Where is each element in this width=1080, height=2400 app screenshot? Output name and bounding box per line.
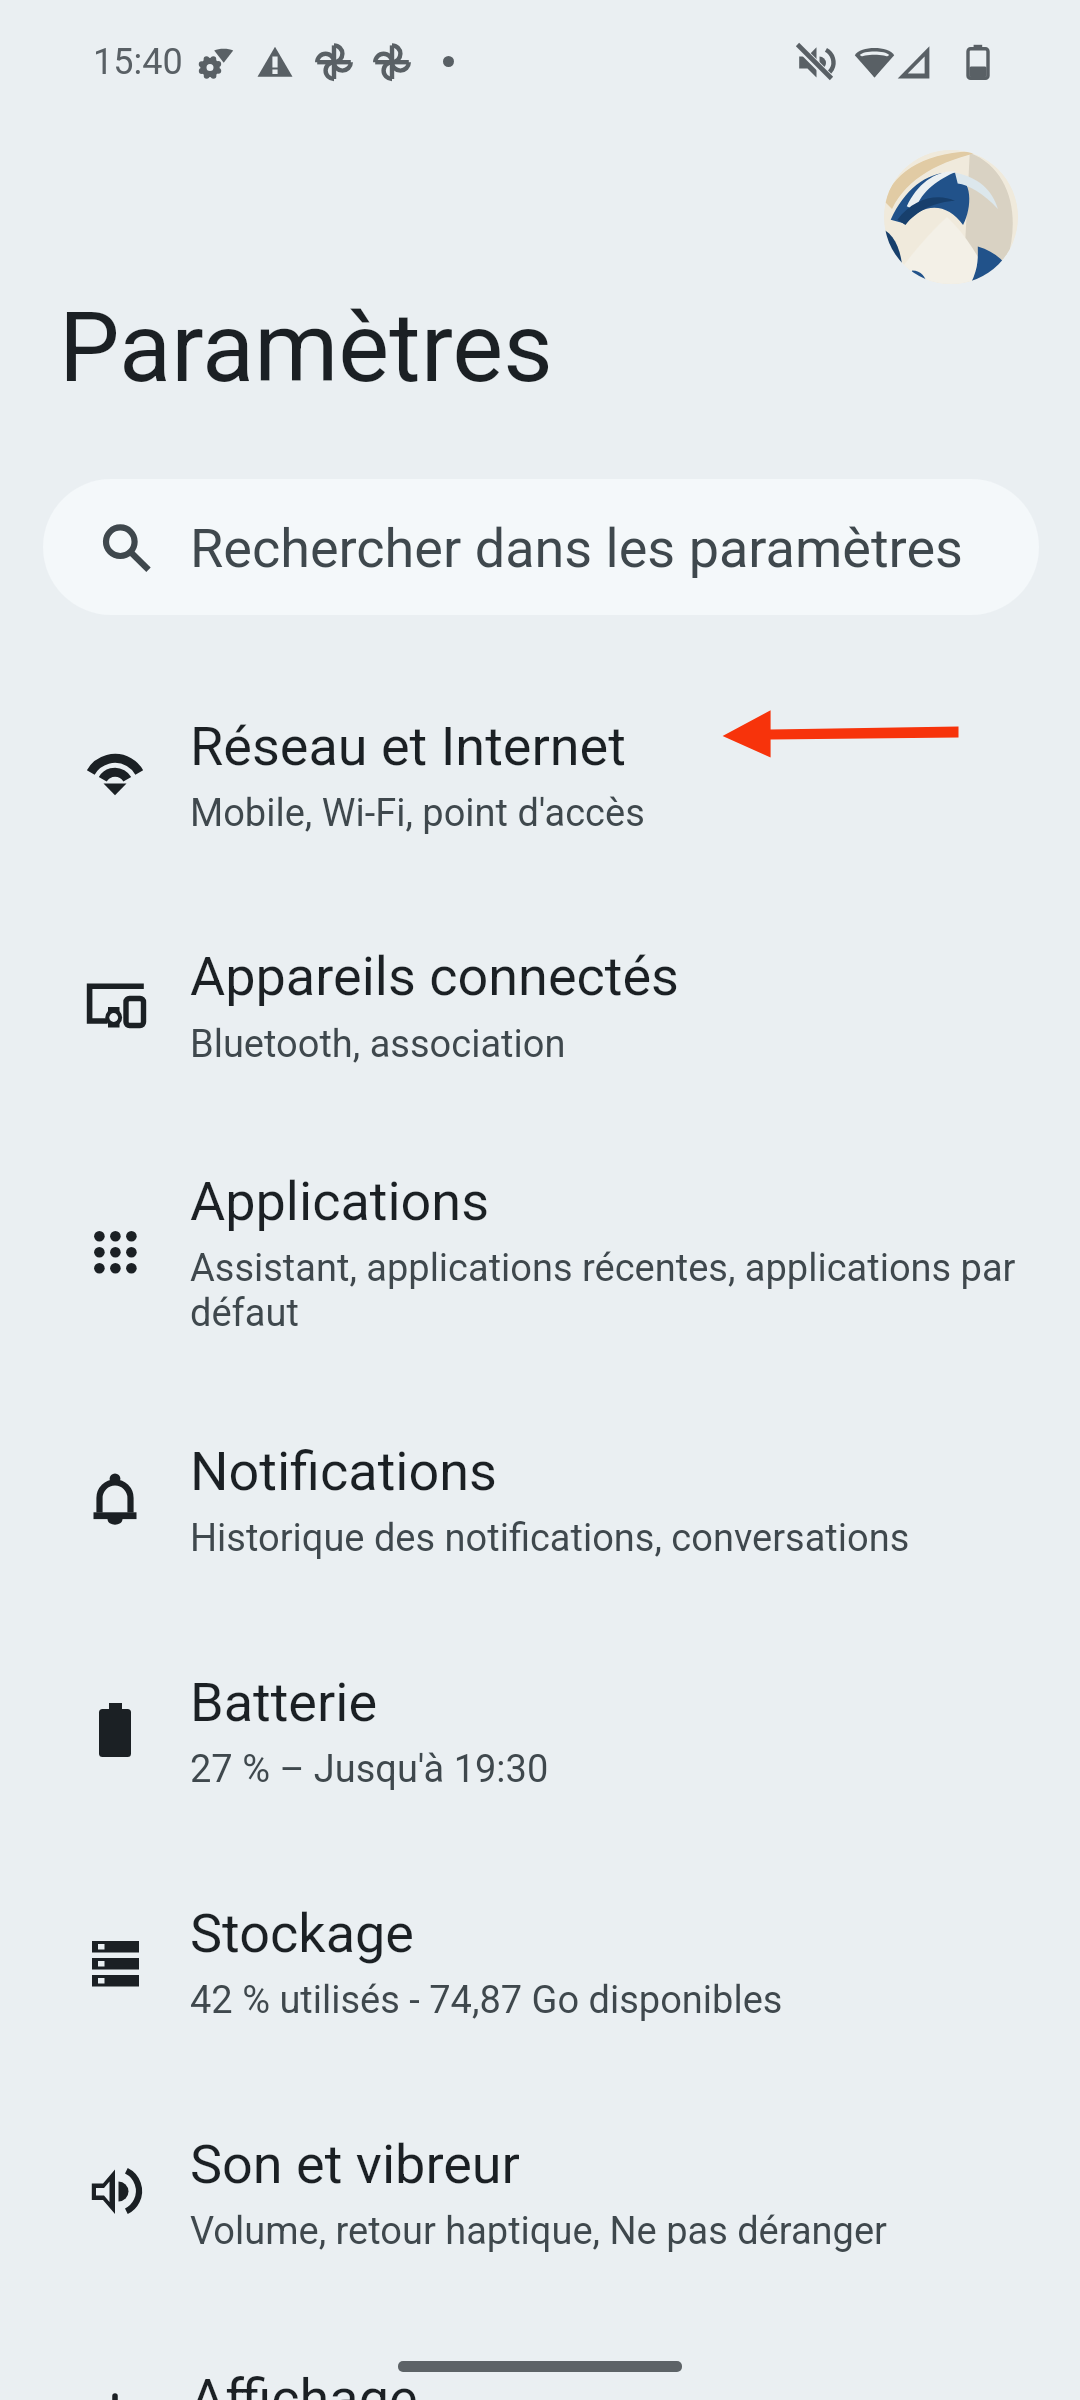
staticText: 27 % – Jusqu'à 19:30	[190, 1747, 549, 1792]
staticText: Notifications	[190, 1440, 497, 1503]
button[interactable]: Appareils connectés	[0, 899, 1080, 2400]
staticText: Volume, retour haptique, Ne pas déranger	[190, 2209, 887, 2254]
button[interactable]: Rechercher dans les paramètres	[43, 479, 1039, 615]
staticText: Historique des notifications, conversati…	[190, 1516, 910, 1561]
button[interactable]: Réseau et Internet	[0, 669, 1080, 2400]
button[interactable]: Stockage	[0, 1856, 1080, 2400]
button[interactable]: Notifications	[0, 1394, 1080, 2400]
staticText: Appareils connectés	[190, 945, 679, 1008]
button[interactable]: Applications	[0, 1124, 1080, 2400]
staticText: Assistant, applications récentes, applic…	[190, 1246, 1016, 1336]
staticText: Batterie	[190, 1671, 378, 1734]
staticText: Mobile, Wi-Fi, point d'accès	[190, 791, 645, 836]
staticText: 42 % utilisés - 74,87 Go disponibles	[190, 1978, 783, 2023]
staticText: Stockage	[190, 1902, 414, 1965]
staticText: Rechercher dans les paramètres	[190, 517, 963, 580]
staticText: Affichage	[190, 2367, 418, 2400]
staticText: 15:40	[93, 41, 183, 83]
staticText: Applications	[190, 1170, 490, 1233]
staticText: Paramètres	[59, 292, 553, 405]
staticText: Bluetooth, association	[190, 1022, 566, 1067]
button[interactable]: Son et vibreur	[0, 2087, 1080, 2400]
staticText: Réseau et Internet	[190, 715, 626, 778]
button[interactable]: Affichage	[0, 2321, 1080, 2400]
button[interactable]: Batterie	[0, 1625, 1080, 2400]
button[interactable]: Compte Google	[884, 150, 1018, 284]
staticText: Son et vibreur	[190, 2133, 520, 2196]
